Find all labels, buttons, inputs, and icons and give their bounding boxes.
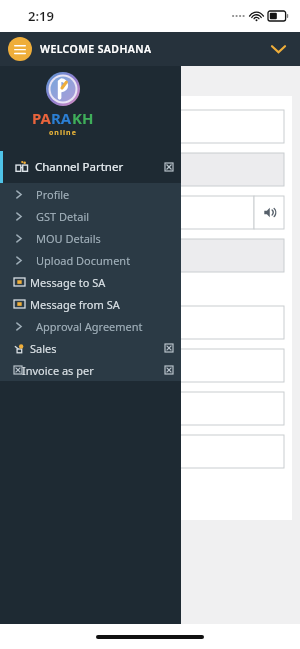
staticText: Upload Document bbox=[36, 253, 131, 268]
staticText: Message from SA bbox=[30, 297, 120, 312]
staticText: online bbox=[49, 128, 77, 138]
button[interactable]: Message from SA bbox=[0, 293, 181, 315]
button[interactable] bbox=[16, 392, 284, 425]
button[interactable]: MOU Details bbox=[0, 227, 181, 249]
button[interactable] bbox=[16, 110, 284, 143]
button[interactable]: Speak bbox=[254, 196, 284, 229]
button[interactable]: Upload Document bbox=[0, 249, 181, 271]
staticText: Approval Agreement bbox=[36, 319, 143, 334]
button[interactable] bbox=[16, 435, 284, 468]
staticText: Channel Partner bbox=[35, 159, 124, 175]
staticText: Profile bbox=[36, 187, 70, 202]
button[interactable] bbox=[16, 196, 254, 229]
staticText: PA bbox=[32, 108, 51, 128]
button[interactable]: Expand menu bbox=[262, 33, 294, 65]
staticText: WELCOME SADHANA bbox=[40, 42, 152, 56]
staticText: Welcome sadhana bbox=[12, 71, 141, 91]
button[interactable]: Sales bbox=[0, 337, 181, 359]
staticText: Message to SA bbox=[30, 275, 106, 290]
button[interactable]: Invoice as per bbox=[0, 359, 181, 381]
button[interactable]: Approval Agreement bbox=[0, 315, 181, 337]
button[interactable]: Message to SA bbox=[0, 271, 181, 293]
button[interactable] bbox=[16, 239, 284, 272]
button[interactable]: GST Detail bbox=[0, 205, 181, 227]
staticText: Sales bbox=[30, 341, 57, 356]
staticText: RA bbox=[51, 108, 72, 128]
button[interactable] bbox=[16, 306, 284, 339]
button[interactable] bbox=[16, 153, 284, 186]
staticText: Balance bbox=[14, 99, 181, 130]
button[interactable] bbox=[16, 349, 284, 382]
button[interactable]: Profile bbox=[0, 183, 181, 205]
staticText: Invoice as per bbox=[22, 363, 94, 378]
staticText: User: bbox=[14, 68, 181, 99]
staticText: MOU Details bbox=[36, 231, 101, 246]
button[interactable]: Channel Partner bbox=[0, 151, 181, 183]
staticText: 2:19 bbox=[28, 7, 54, 25]
staticText: KH bbox=[72, 108, 94, 128]
button[interactable]: Open navigation menu bbox=[8, 37, 32, 61]
staticText: GST Detail bbox=[36, 209, 90, 224]
